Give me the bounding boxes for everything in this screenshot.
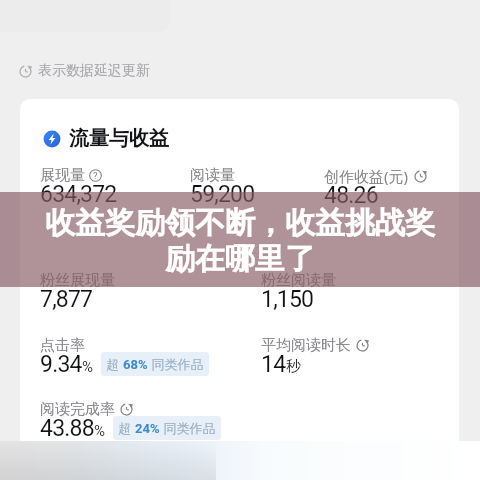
staticText: 1,150 [261, 286, 314, 313]
staticText: 收益奖励领不断，收益挑战奖励在哪里了 [40, 204, 440, 278]
staticText: ? [93, 170, 98, 181]
staticText: 超 [106, 355, 123, 373]
staticText: % [94, 422, 105, 440]
staticText: 同类作品 [148, 355, 204, 373]
staticText: 超 [118, 419, 135, 437]
staticText: 43.88 [40, 415, 94, 442]
button[interactable]: 粉丝展现量 [40, 271, 115, 317]
button[interactable]: 点击率 [40, 336, 209, 382]
staticText: 展现量 [40, 166, 85, 185]
staticText: 创作收益(元) [324, 166, 409, 186]
staticText: % [82, 358, 93, 376]
staticText: 平均阅读时长 [261, 336, 351, 355]
staticText: 14 [261, 351, 286, 378]
button[interactable]: 表示数据延迟更新 [19, 62, 150, 80]
staticText: 粉丝展现量 [40, 271, 115, 290]
staticText: 粉丝阅读量 [261, 271, 336, 290]
staticText: 48.26 [324, 182, 378, 209]
button[interactable]: 展现量 [40, 166, 117, 212]
staticText: 阅读量 [190, 166, 235, 185]
button[interactable]: 创作收益(元) [324, 166, 427, 213]
staticText: 634,372 [40, 181, 117, 208]
staticText: 68% [123, 357, 148, 372]
staticText: 24% [135, 421, 160, 436]
button[interactable]: 超 [101, 352, 209, 376]
staticText: 59,200 [190, 181, 255, 208]
button[interactable]: 超 [113, 416, 221, 440]
button[interactable]: 收益奖励领不断，收益挑战奖励在哪里了 [0, 192, 480, 287]
staticText: 同类作品 [160, 419, 216, 437]
button[interactable]: 流量与收益 [43, 126, 169, 151]
button[interactable]: 阅读完成率 [40, 400, 221, 446]
button[interactable]: 平均阅读时长 [261, 336, 369, 382]
button[interactable]: 阅读量 [190, 166, 255, 212]
staticText: 流量与收益 [69, 126, 169, 151]
staticText: 秒 [286, 357, 301, 376]
staticText: 阅读完成率 [40, 400, 115, 419]
staticText: 7,877 [40, 286, 93, 313]
staticText: 点击率 [40, 336, 85, 355]
button[interactable]: 粉丝阅读量 [261, 271, 336, 317]
staticText: 表示数据延迟更新 [38, 62, 150, 80]
staticText: 9.34 [40, 351, 82, 378]
